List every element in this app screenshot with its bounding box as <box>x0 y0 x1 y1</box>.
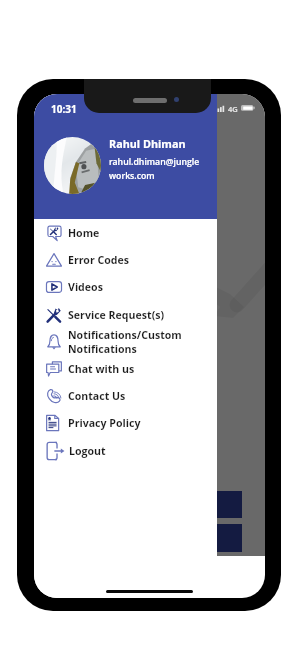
button[interactable]: Service Request(s) <box>34 301 217 328</box>
staticText: Privacy Policy <box>68 416 141 430</box>
staticText: Videos <box>68 280 103 294</box>
staticText: Contact Us <box>68 389 126 403</box>
button[interactable]: Privacy Policy <box>34 409 217 436</box>
button[interactable]: Contact Us <box>34 382 217 409</box>
button[interactable]: Error Codes <box>34 246 217 273</box>
staticText: 10:31 <box>51 102 77 116</box>
staticText: Service Request(s) <box>68 308 165 322</box>
staticText: rahul.dhiman@jungle works.com <box>109 156 200 181</box>
staticText: Logout <box>69 444 106 458</box>
button[interactable]: Chat with us <box>34 355 217 382</box>
staticText: Rahul Dhiman <box>109 136 186 151</box>
staticText: Notifications/Custom Notifications <box>68 328 182 355</box>
button[interactable]: Notifications/Custom Notifications <box>34 328 217 355</box>
button[interactable]: Videos <box>34 273 217 300</box>
staticText: Home <box>68 226 100 240</box>
button[interactable]: Home <box>34 219 217 246</box>
button[interactable]: Logout <box>34 437 217 464</box>
staticText: Chat with us <box>68 362 135 376</box>
staticText: 4G <box>228 104 238 114</box>
staticText: Error Codes <box>68 253 130 267</box>
